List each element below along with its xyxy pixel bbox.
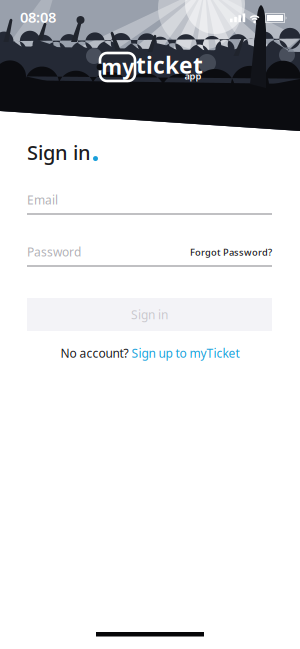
button[interactable]: Sign in	[27, 298, 272, 331]
staticText: 08:08	[20, 7, 56, 27]
staticText: Sign in	[27, 139, 91, 166]
staticText: Sign up to myTicket	[131, 345, 239, 361]
button[interactable]: Password	[27, 243, 272, 267]
staticText: app	[184, 70, 201, 82]
staticText: Forgot Password?	[190, 246, 272, 258]
staticText: ticket	[136, 50, 203, 80]
button[interactable]: Email	[27, 191, 272, 215]
staticText: No account?	[60, 345, 128, 361]
button[interactable]: No account?	[60, 345, 239, 361]
staticText: Sign in	[131, 306, 168, 322]
button[interactable]: Forgot Password?	[27, 246, 272, 258]
staticText: my	[101, 52, 134, 81]
staticText: Email	[27, 192, 58, 208]
staticText: Password	[27, 244, 81, 260]
